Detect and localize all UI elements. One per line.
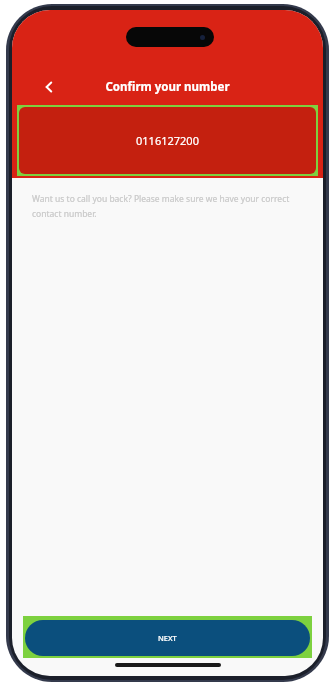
button[interactable]: Back <box>34 72 64 102</box>
staticText: Confirm your number <box>105 79 230 95</box>
staticText: Want us to call you back? Please make su… <box>32 193 294 219</box>
staticText: NEXT <box>158 633 177 643</box>
button[interactable]: NEXT <box>25 620 310 656</box>
staticText: 0116127200 <box>136 133 199 148</box>
button[interactable]: 0116127200 <box>19 107 316 174</box>
